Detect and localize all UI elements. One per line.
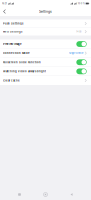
staticText: Clear cache (3, 79, 20, 82)
staticText: Connection Mode (3, 52, 30, 55)
staticText: Settings (39, 9, 52, 14)
staticText: 1400 (76, 30, 81, 33)
button[interactable]: Preview Image (0, 39, 91, 49)
button[interactable]: Push Settings (0, 19, 91, 28)
staticText: Preview Image (3, 42, 22, 46)
button[interactable]: Connection Mode (0, 49, 91, 58)
staticText: 100% (78, 2, 85, 5)
button[interactable]: Back (0, 7, 9, 16)
button[interactable]: Fullscreen Slide Function (0, 58, 91, 67)
button[interactable]: MTU Settings (0, 28, 91, 36)
staticText: Single Device (69, 52, 83, 54)
staticText: Push Settings (3, 22, 23, 25)
button[interactable]: Watching video always bright (0, 67, 91, 76)
staticText: Watching video always bright (3, 70, 46, 73)
staticText: Fullscreen Slide Function (3, 61, 41, 64)
staticText: MTU Settings (3, 30, 22, 33)
button[interactable]: Home (39, 189, 52, 200)
button[interactable]: Recent apps (0, 189, 39, 200)
staticText: 16:21 (2, 2, 7, 5)
button[interactable]: Clear cache (0, 76, 91, 85)
